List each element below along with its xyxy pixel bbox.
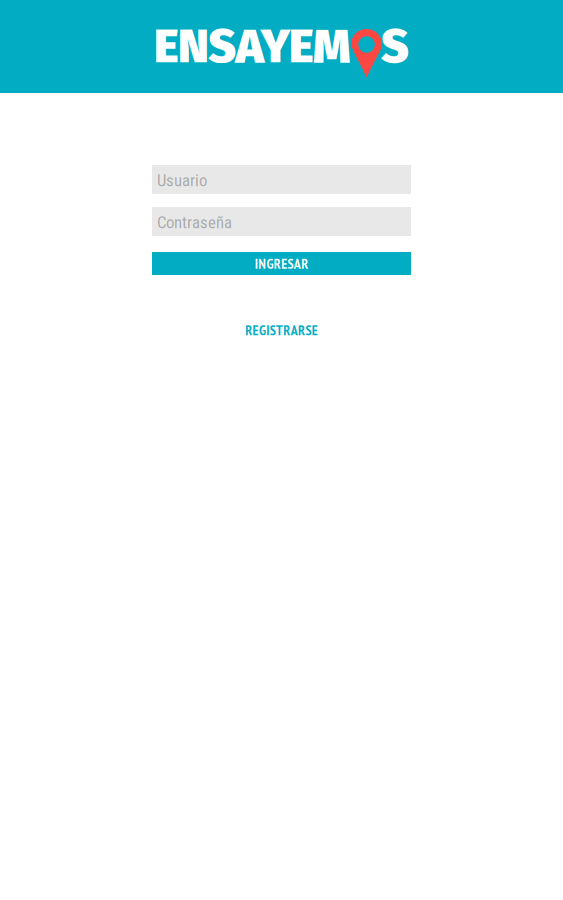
staticText: S <box>381 18 409 75</box>
button[interactable]: Contraseña <box>152 207 411 236</box>
staticText: Contraseña <box>157 213 232 232</box>
staticText: Usuario <box>157 171 207 190</box>
staticText: ENSAYEM <box>154 18 350 75</box>
staticText: REGISTRARSE <box>245 321 318 339</box>
staticText: INGRESAR <box>255 254 308 272</box>
button[interactable]: INGRESAR <box>152 252 411 275</box>
button[interactable]: Usuario <box>152 165 411 194</box>
button[interactable]: REGISTRARSE <box>245 321 318 339</box>
